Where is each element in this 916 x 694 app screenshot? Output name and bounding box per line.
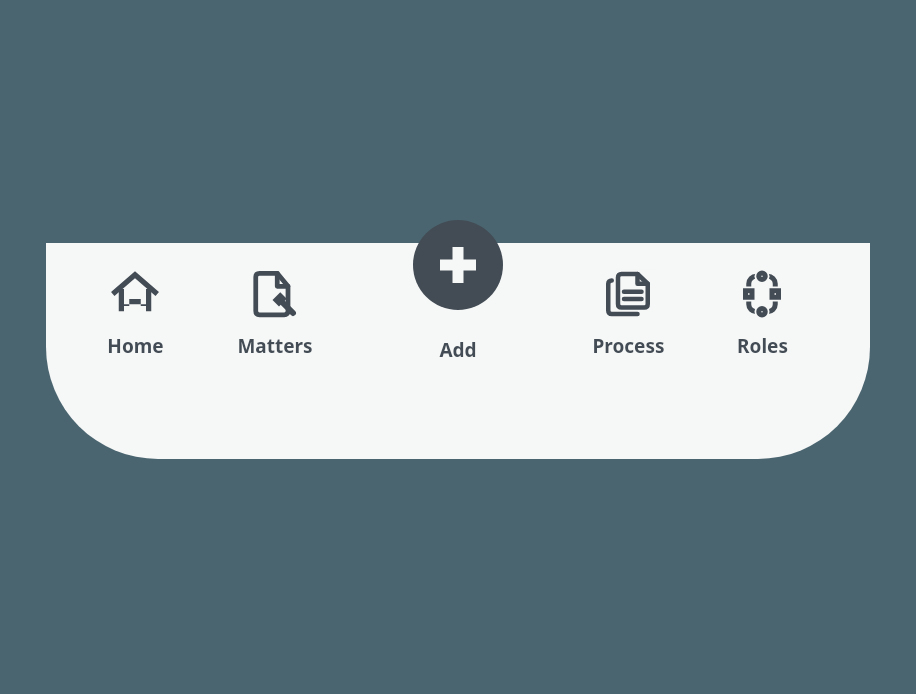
staticText: Roles	[737, 333, 788, 359]
button[interactable]: Roles	[697, 269, 827, 359]
button[interactable]: Process	[563, 269, 693, 359]
staticText: Process	[592, 333, 665, 359]
staticText: Matters	[237, 333, 313, 359]
button[interactable]: Add	[413, 220, 503, 310]
button[interactable]: Home	[70, 269, 200, 359]
button[interactable]: Add	[403, 243, 513, 363]
staticText: Add	[439, 337, 477, 363]
staticText: Home	[107, 333, 164, 359]
button[interactable]: Matters	[210, 269, 340, 359]
